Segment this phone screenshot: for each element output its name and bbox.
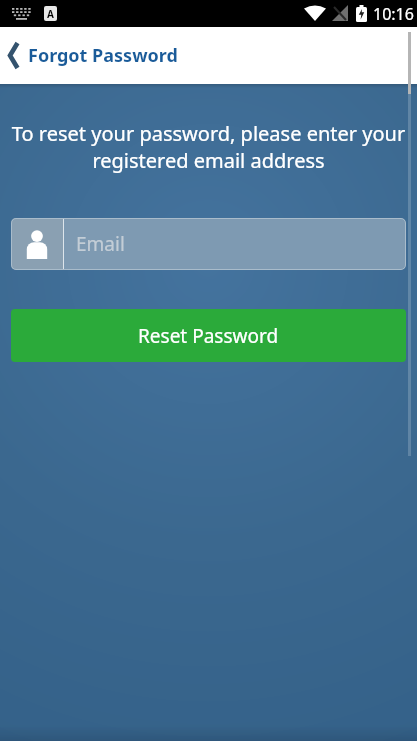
staticText: 10:16 xyxy=(373,3,414,25)
button[interactable]: Reset Password xyxy=(11,309,406,362)
staticText: A xyxy=(47,7,54,21)
button[interactable]: Email xyxy=(11,218,406,270)
staticText: Reset Password xyxy=(138,323,279,349)
staticText: Email xyxy=(76,231,125,257)
staticText: Forgot Password xyxy=(28,43,178,68)
button[interactable]: Forgot Password xyxy=(0,27,178,84)
staticText: To reset your password, please enter you… xyxy=(4,120,413,174)
